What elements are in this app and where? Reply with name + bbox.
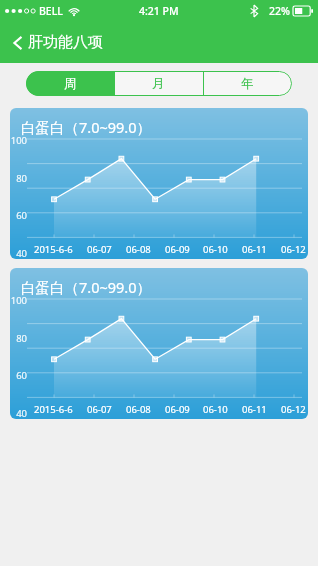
staticText: 80 xyxy=(10,172,27,185)
staticText: 40 xyxy=(10,407,27,419)
staticText: 4:21 PM xyxy=(139,4,179,18)
button[interactable]: 周 xyxy=(26,71,114,96)
staticText: 2015-6-6 xyxy=(34,243,73,256)
staticText: 肝功能八项 xyxy=(28,33,103,52)
staticText: 周 xyxy=(64,76,77,92)
other: Back xyxy=(11,34,25,52)
staticText: 06-09 xyxy=(165,403,190,416)
button[interactable]: Back xyxy=(0,27,113,58)
staticText: 06-10 xyxy=(203,403,228,416)
staticText: 06-07 xyxy=(87,243,112,256)
staticText: 2015-6-6 xyxy=(34,403,73,416)
staticText: 白蛋白（7.0~99.0） xyxy=(21,277,152,297)
staticText: 06-12 xyxy=(281,243,306,256)
staticText: 60 xyxy=(10,369,27,382)
staticText: 月 xyxy=(152,76,165,92)
staticText: 年 xyxy=(241,76,254,92)
staticText: 白蛋白（7.0~99.0） xyxy=(21,117,152,137)
staticText: 06-09 xyxy=(165,243,190,256)
staticText: BELL xyxy=(39,4,63,18)
staticText: 06-07 xyxy=(87,403,112,416)
staticText: 06-10 xyxy=(203,243,228,256)
staticText: 06-08 xyxy=(126,403,151,416)
staticText: 06-11 xyxy=(242,243,267,256)
button[interactable]: 年 xyxy=(203,71,292,96)
staticText: 22% xyxy=(269,4,290,18)
staticText: 40 xyxy=(10,247,27,259)
button[interactable]: 白蛋白（7.0~99.0） xyxy=(10,268,308,419)
staticText: 80 xyxy=(10,332,27,345)
button[interactable]: 白蛋白（7.0~99.0） xyxy=(10,108,308,259)
staticText: 60 xyxy=(10,209,27,222)
staticText: 06-08 xyxy=(126,243,151,256)
button[interactable]: 月 xyxy=(114,71,203,96)
staticText: 100 xyxy=(10,134,27,147)
staticText: 100 xyxy=(10,294,27,307)
staticText: 06-12 xyxy=(281,403,306,416)
staticText: 06-11 xyxy=(242,403,267,416)
